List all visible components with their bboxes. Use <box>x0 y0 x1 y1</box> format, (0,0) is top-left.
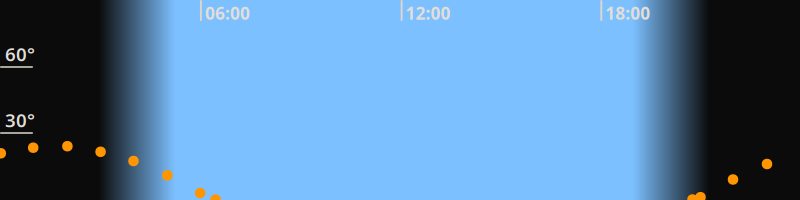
button[interactable]: Moon elevation chart <box>0 0 800 200</box>
staticText: 06:00 <box>205 1 250 24</box>
staticText: 60° <box>5 42 35 66</box>
staticText: 12:00 <box>406 1 451 24</box>
staticText: 30° <box>5 108 35 132</box>
staticText: 18:00 <box>605 1 650 24</box>
